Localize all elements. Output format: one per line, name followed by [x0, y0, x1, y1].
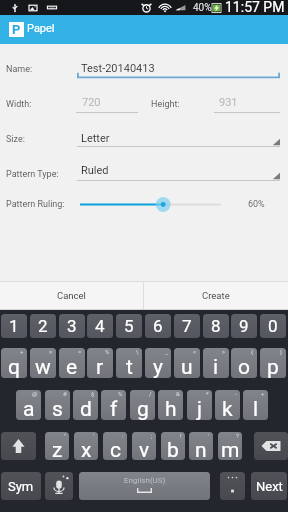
- button[interactable]: 4: [87, 314, 113, 338]
- button[interactable]: 8: [203, 314, 229, 338]
- staticText: 1: [9, 316, 19, 336]
- staticText: Name:: [6, 64, 33, 75]
- button[interactable]: b: [161, 432, 185, 460]
- button[interactable]: p: [260, 348, 286, 378]
- staticText: 60%: [248, 199, 265, 210]
- staticText: #: [63, 390, 67, 397]
- button[interactable]: q: [1, 348, 27, 378]
- button[interactable]: x: [74, 432, 98, 460]
- button[interactable]: Sym: [1, 472, 41, 500]
- staticText: /: [149, 390, 152, 397]
- staticText: q: [8, 355, 20, 378]
- button[interactable]: Cancel: [0, 282, 143, 309]
- staticText: !: [180, 432, 182, 439]
- staticText: s: [52, 397, 63, 420]
- staticText: i: [213, 355, 219, 378]
- button[interactable]: 7: [174, 314, 200, 338]
- staticText: Papel: [27, 22, 55, 35]
- button[interactable]: 3: [59, 314, 85, 338]
- button[interactable]: Period: [220, 472, 245, 500]
- staticText: Width:: [6, 99, 32, 110]
- button[interactable]: 0: [260, 314, 286, 338]
- staticText: r: [96, 355, 104, 378]
- button[interactable]: Create: [144, 282, 288, 309]
- staticText: Sym: [8, 479, 34, 494]
- staticText: e: [66, 355, 78, 378]
- staticText: 5: [124, 316, 134, 336]
- staticText: x: [81, 438, 92, 460]
- button[interactable]: v: [132, 432, 156, 460]
- staticText: P: [12, 22, 21, 37]
- button[interactable]: 5: [116, 314, 142, 338]
- staticText: *: [206, 390, 209, 397]
- button[interactable]: Space: [79, 472, 210, 500]
- staticText: Letter: [81, 132, 110, 145]
- button[interactable]: r: [87, 348, 113, 378]
- staticText: t: [126, 355, 133, 378]
- staticText: \: [136, 348, 139, 355]
- button[interactable]: o: [231, 348, 257, 378]
- button[interactable]: Voice input: [45, 472, 73, 500]
- staticText: Create: [202, 290, 230, 301]
- button[interactable]: t: [116, 348, 142, 378]
- staticText: 11:57 PM: [225, 0, 285, 14]
- staticText: ×: [49, 348, 53, 355]
- button[interactable]: z: [45, 432, 69, 460]
- button[interactable]: Backspace: [254, 432, 288, 460]
- staticText: }: [280, 348, 283, 355]
- staticText: +: [20, 348, 24, 355]
- staticText: 6: [153, 316, 163, 336]
- staticText: 931: [219, 96, 238, 109]
- button[interactable]: f: [101, 390, 126, 420]
- staticText: z: [52, 438, 63, 460]
- button[interactable]: u: [174, 348, 200, 378]
- other: Open dropdown: [272, 172, 280, 180]
- button[interactable]: m: [218, 432, 242, 460]
- button[interactable]: a: [16, 390, 41, 420]
- staticText: >: [222, 348, 226, 355]
- staticText: $: [91, 390, 95, 397]
- staticText: 720: [82, 96, 101, 109]
- button[interactable]: 9: [231, 314, 257, 338]
- button[interactable]: Shift: [1, 432, 36, 460]
- button[interactable]: d: [73, 390, 98, 420]
- staticText: n: [195, 438, 207, 460]
- button[interactable]: l: [243, 390, 268, 420]
- button[interactable]: e: [59, 348, 85, 378]
- button[interactable]: 6: [145, 314, 171, 338]
- staticText: f: [110, 397, 118, 420]
- button[interactable]: j: [187, 390, 212, 420]
- button[interactable]: s: [45, 390, 70, 420]
- staticText: ': [93, 432, 95, 439]
- staticText: o: [238, 355, 250, 378]
- staticText: ;: [151, 432, 153, 439]
- button[interactable]: 2: [30, 314, 56, 338]
- button[interactable]: h: [158, 390, 183, 420]
- button[interactable]: y: [145, 348, 171, 378]
- staticText: English(US): [124, 476, 166, 485]
- staticText: k: [222, 397, 233, 420]
- staticText: @: [32, 390, 38, 397]
- staticText: :: [122, 432, 124, 439]
- staticText: {: [251, 348, 254, 355]
- staticText: +: [261, 390, 265, 397]
- staticText: g: [137, 397, 149, 420]
- staticText: 0: [268, 316, 278, 336]
- button[interactable]: i: [203, 348, 229, 378]
- button[interactable]: g: [130, 390, 155, 420]
- staticText: Ruled: [81, 164, 109, 177]
- button[interactable]: n: [189, 432, 213, 460]
- staticText: c: [110, 438, 121, 460]
- staticText: ?: [236, 432, 239, 439]
- staticText: Cancel: [57, 290, 86, 301]
- button[interactable]: w: [30, 348, 56, 378]
- staticText: j: [197, 397, 203, 420]
- staticText: 3: [67, 316, 77, 336]
- button[interactable]: k: [215, 390, 240, 420]
- button[interactable]: 1: [1, 314, 27, 338]
- button[interactable]: c: [103, 432, 127, 460]
- staticText: _: [165, 348, 168, 355]
- button[interactable]: Next: [251, 472, 287, 500]
- staticText: &: [176, 390, 180, 397]
- staticText: ": [64, 432, 66, 439]
